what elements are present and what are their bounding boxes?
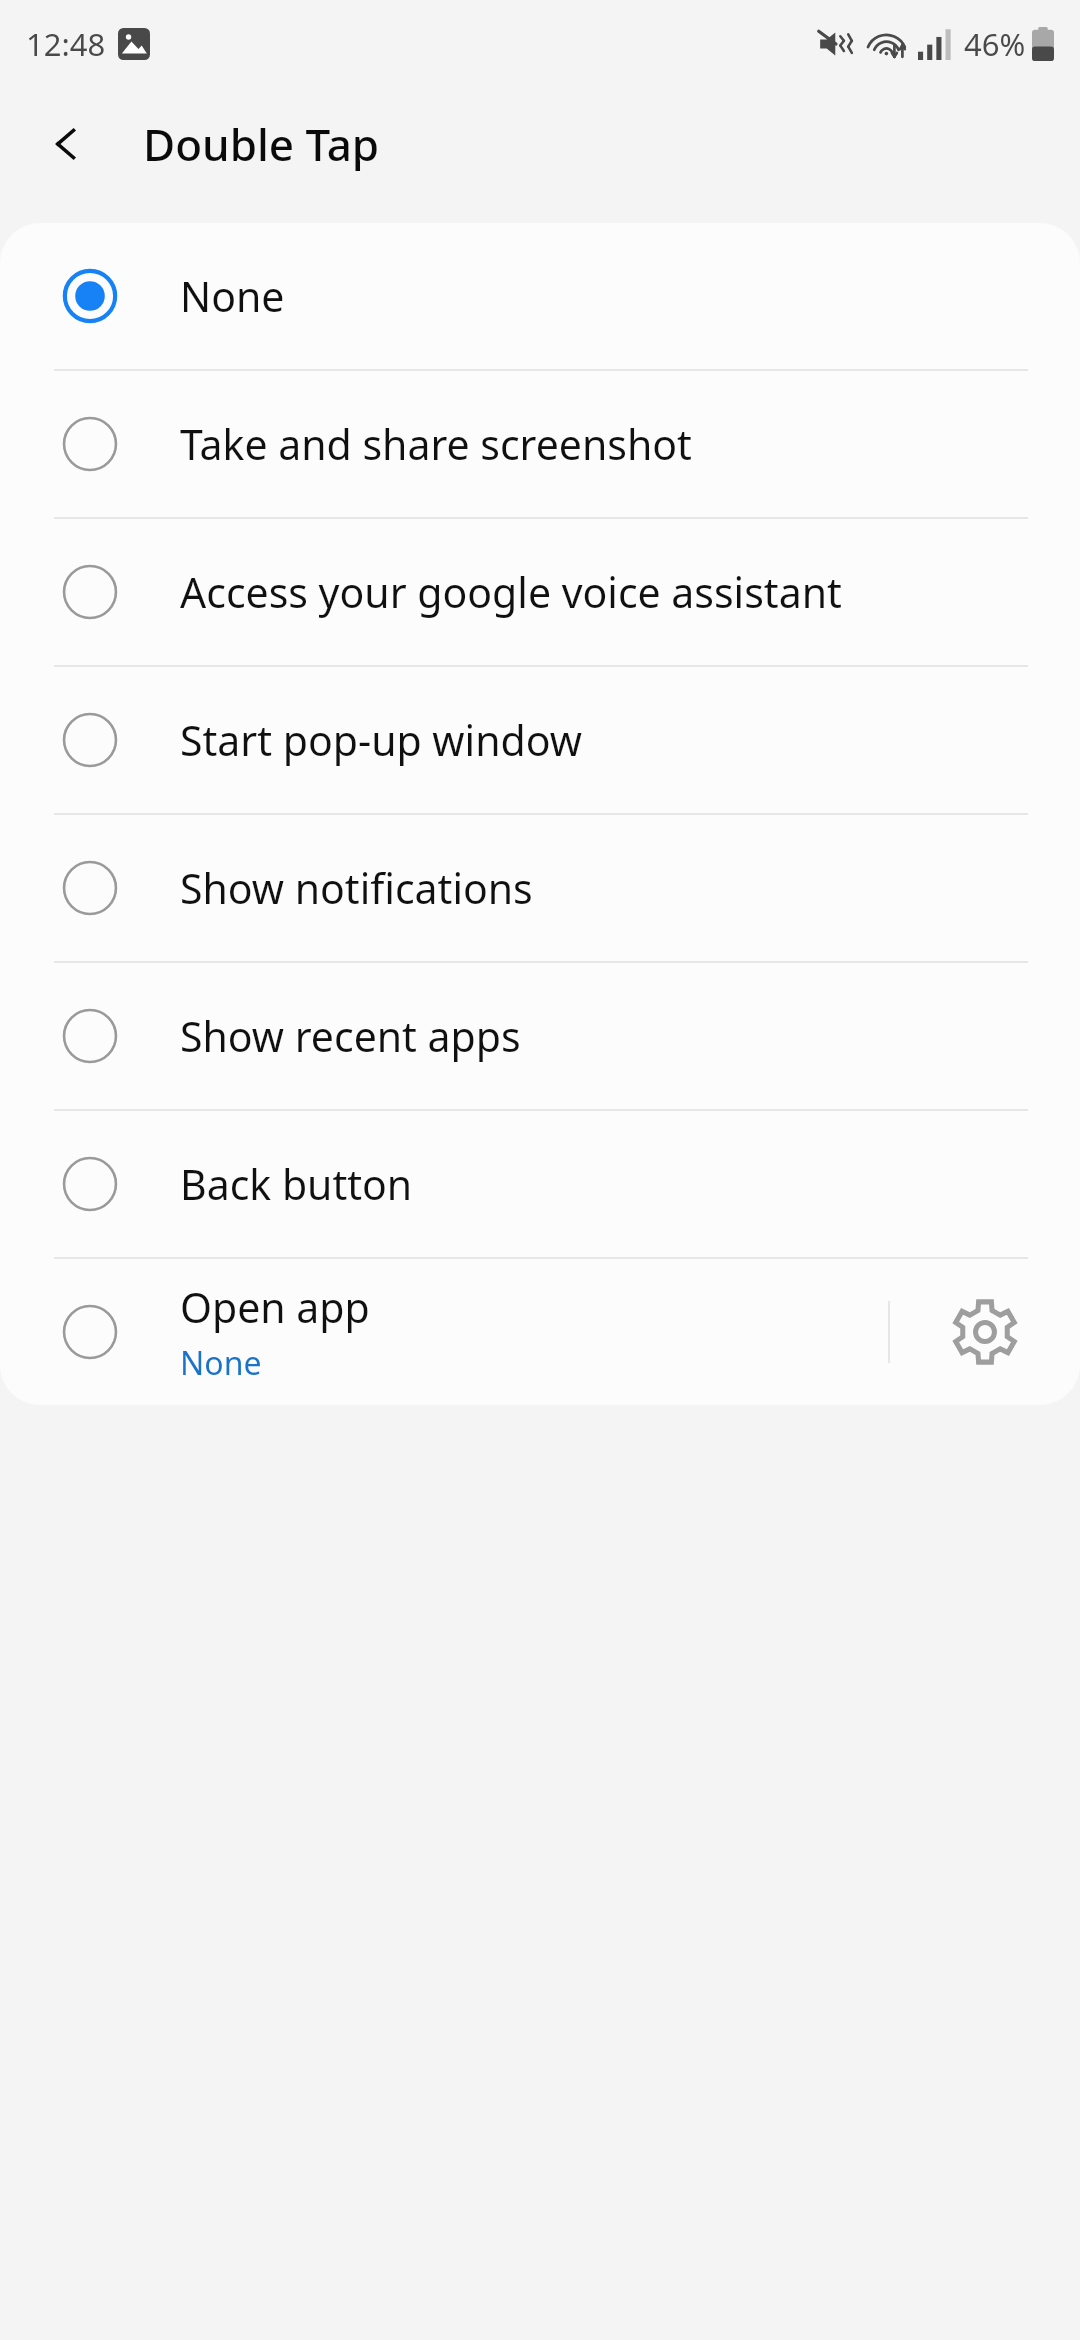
staticText: Take and share screenshot bbox=[180, 416, 692, 472]
staticText: 12:48 bbox=[26, 23, 106, 65]
button[interactable]: Open app bbox=[0, 1259, 1080, 1405]
button[interactable]: Show recent apps bbox=[0, 963, 1080, 1109]
staticText: Access your google voice assistant bbox=[180, 564, 842, 620]
button[interactable]: Start pop-up window bbox=[0, 667, 1080, 813]
staticText: Double Tap bbox=[143, 114, 380, 174]
button[interactable]: Back button bbox=[0, 1111, 1080, 1257]
staticText: Back button bbox=[180, 1156, 413, 1212]
staticText: 46% bbox=[964, 23, 1026, 65]
button[interactable]: Access your google voice assistant bbox=[0, 519, 1080, 665]
staticText: None bbox=[180, 268, 285, 324]
staticText: Open app bbox=[180, 1279, 370, 1335]
button[interactable]: Open app settings bbox=[890, 1259, 1080, 1405]
button[interactable]: Back bbox=[36, 114, 96, 174]
button[interactable]: Take and share screenshot bbox=[0, 371, 1080, 517]
button[interactable]: None bbox=[0, 223, 1080, 369]
staticText: Show recent apps bbox=[180, 1008, 521, 1064]
staticText: Start pop-up window bbox=[180, 712, 582, 768]
staticText: Show notifications bbox=[180, 860, 533, 916]
button[interactable]: Show notifications bbox=[0, 815, 1080, 961]
staticText: None bbox=[180, 1341, 262, 1385]
